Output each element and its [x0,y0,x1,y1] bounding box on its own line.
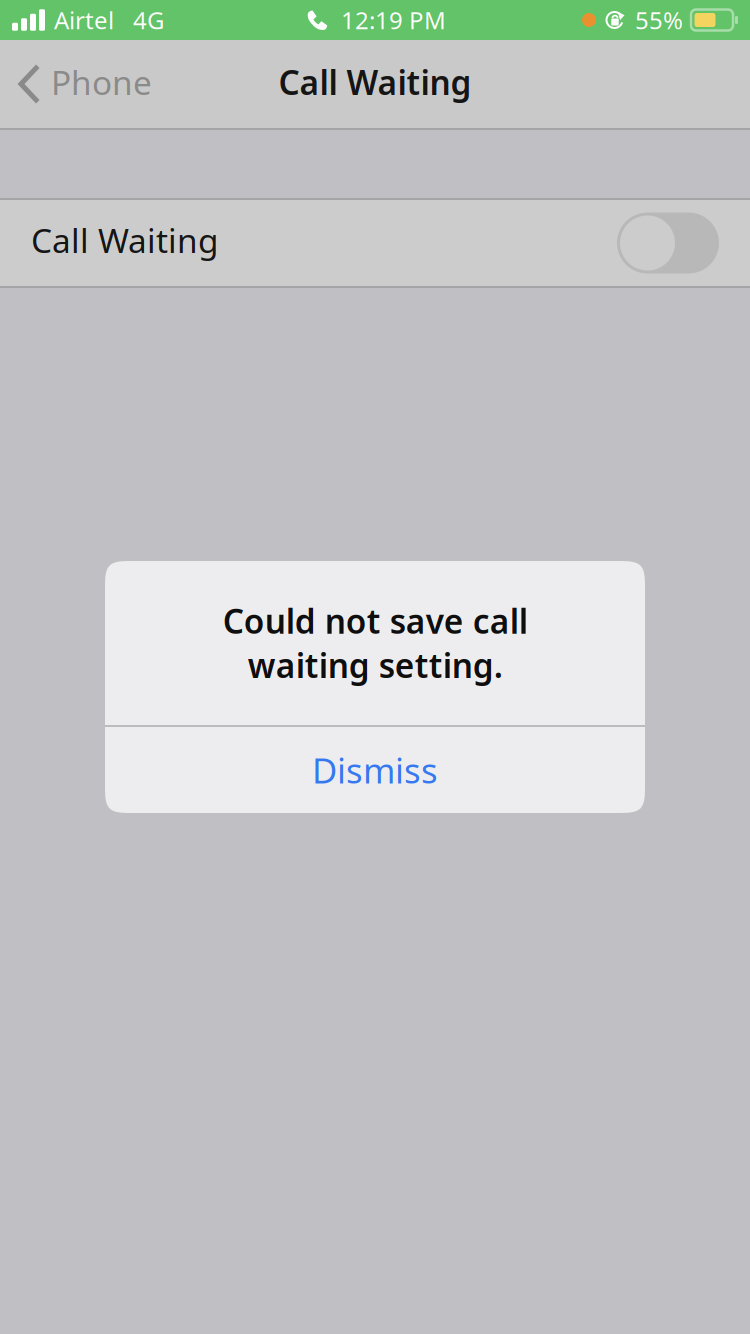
staticText: Could not save call waiting setting. [222,599,527,687]
staticText: Call Waiting [278,60,471,104]
button[interactable]: Call Waiting [0,200,750,286]
staticText: Phone [51,60,152,104]
button[interactable]: Phone [0,40,168,128]
staticText: 12:19 PM [341,4,446,36]
staticText: 55% [635,4,683,36]
staticText: Dismiss [312,747,438,793]
staticText: Airtel [54,4,114,36]
staticText: Call Waiting [31,218,219,262]
button[interactable]: Dismiss [105,727,645,813]
staticText: 4G [133,4,164,36]
